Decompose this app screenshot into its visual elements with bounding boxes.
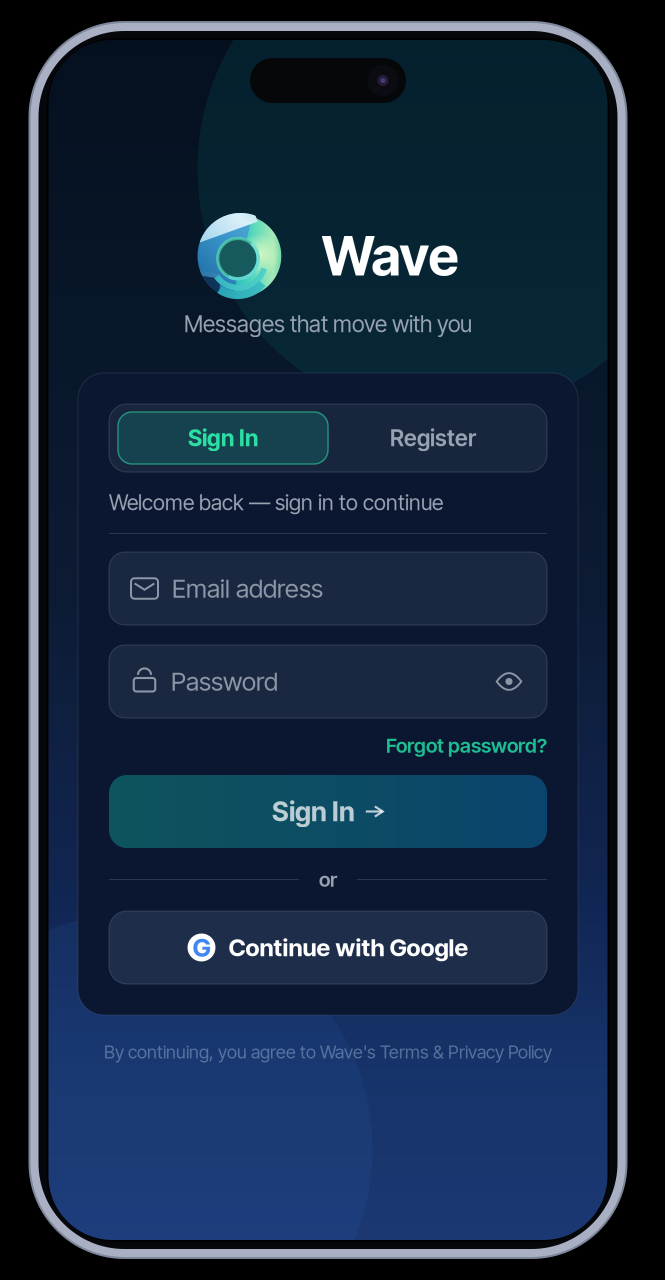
staticText: Forgot password? [386,733,547,758]
button[interactable]: Show password [491,663,527,699]
staticText: Password [171,666,278,697]
staticText: Continue with Google [228,933,468,962]
button[interactable]: Sign In [109,775,547,848]
button[interactable]: Forgot password? [386,731,547,760]
staticText: Email address [172,573,323,604]
button[interactable]: Sign In [118,412,328,464]
staticText: G [192,932,210,963]
staticText: Messages that move with you [184,310,472,338]
button[interactable]: G [109,911,547,984]
staticText: By continuing, you agree to Wave's Terms… [104,1041,552,1063]
button[interactable]: Register [328,412,538,464]
staticText: Sign In [272,795,355,828]
staticText: Wave [321,224,458,288]
staticText: Welcome back — sign in to continue [109,490,443,515]
staticText: or [319,867,337,892]
staticText: Sign In [188,424,258,452]
staticText: Register [390,424,476,452]
